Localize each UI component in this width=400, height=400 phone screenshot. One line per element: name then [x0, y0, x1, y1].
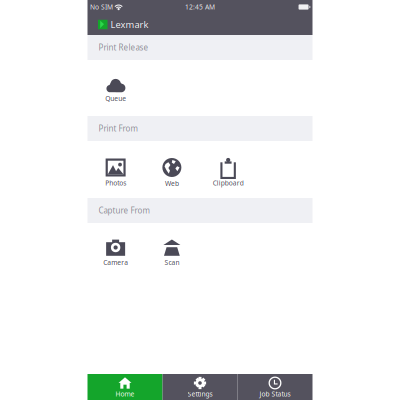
staticText: 12:45 AM — [185, 3, 215, 11]
staticText: Settings — [187, 390, 212, 398]
staticText: Print From — [98, 123, 137, 134]
staticText: Print Release — [98, 42, 148, 53]
staticText: Photos — [105, 179, 126, 187]
staticText: Capture From — [98, 205, 149, 216]
button[interactable]: Settings — [162, 374, 237, 400]
staticText: Scan — [164, 258, 179, 267]
button[interactable]: Scan — [144, 239, 200, 266]
staticText: Web — [165, 179, 179, 188]
button[interactable]: Home — [87, 374, 162, 400]
button[interactable]: Lexmark — [98, 20, 107, 29]
staticText: Job Status — [259, 390, 290, 398]
button[interactable]: Clipboard — [200, 158, 256, 186]
button[interactable]: Web — [144, 158, 200, 187]
staticText: Camera — [103, 258, 128, 267]
button[interactable]: Job Status — [237, 374, 312, 400]
staticText: No SIM — [90, 3, 113, 11]
button[interactable]: Camera — [87, 239, 144, 266]
button[interactable]: Queue — [87, 78, 144, 102]
staticText: Home — [115, 390, 134, 398]
staticText: Queue — [105, 94, 126, 103]
staticText: Lexmark — [110, 18, 148, 31]
button[interactable]: Photos — [87, 158, 144, 186]
staticText: Clipboard — [213, 179, 244, 187]
